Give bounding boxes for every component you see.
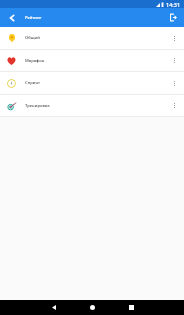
staticText: Спринт bbox=[25, 80, 41, 86]
button[interactable]: Тренировка bbox=[0, 95, 184, 116]
staticText: 14:31 bbox=[166, 1, 181, 8]
staticText: Марафон bbox=[25, 58, 45, 64]
staticText: Тренировка bbox=[25, 103, 50, 109]
button[interactable]: More options bbox=[166, 30, 183, 47]
button[interactable]: Спринт bbox=[0, 72, 184, 94]
staticText: Общий bbox=[25, 35, 40, 41]
button[interactable]: More options bbox=[166, 97, 183, 114]
button[interactable]: Recents bbox=[123, 300, 140, 315]
button[interactable]: More options bbox=[166, 52, 183, 69]
staticText: Рейтинг bbox=[25, 15, 42, 21]
button[interactable]: Home bbox=[84, 300, 101, 315]
button[interactable]: Logout bbox=[164, 8, 183, 27]
button[interactable]: More options bbox=[166, 75, 183, 92]
button[interactable]: Back bbox=[45, 300, 62, 315]
button[interactable]: Марафон bbox=[0, 50, 184, 71]
button[interactable]: Общий bbox=[0, 27, 184, 49]
button[interactable]: Back bbox=[2, 8, 21, 27]
